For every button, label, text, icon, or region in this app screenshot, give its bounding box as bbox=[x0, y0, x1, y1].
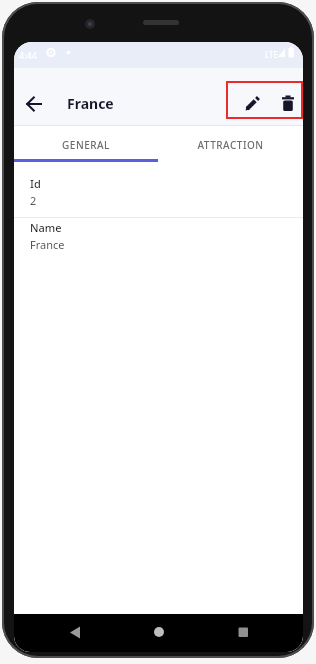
staticText: 2 bbox=[30, 193, 37, 208]
staticText: GENERAL bbox=[62, 138, 110, 152]
staticText: LTE bbox=[265, 49, 278, 60]
button[interactable]: ATTRACTION bbox=[158, 126, 303, 162]
staticText: France bbox=[30, 237, 65, 252]
button[interactable] bbox=[239, 89, 267, 117]
button[interactable]: Id bbox=[14, 162, 303, 217]
button[interactable]: GENERAL bbox=[14, 126, 158, 162]
button[interactable] bbox=[20, 90, 48, 118]
button[interactable] bbox=[274, 89, 302, 117]
staticText: 4:44 bbox=[19, 49, 37, 61]
staticText: Id bbox=[30, 176, 41, 191]
staticText: Name bbox=[30, 220, 62, 235]
staticText: France bbox=[67, 94, 114, 113]
staticText: ATTRACTION bbox=[197, 138, 264, 152]
button[interactable]: Name bbox=[14, 218, 303, 252]
